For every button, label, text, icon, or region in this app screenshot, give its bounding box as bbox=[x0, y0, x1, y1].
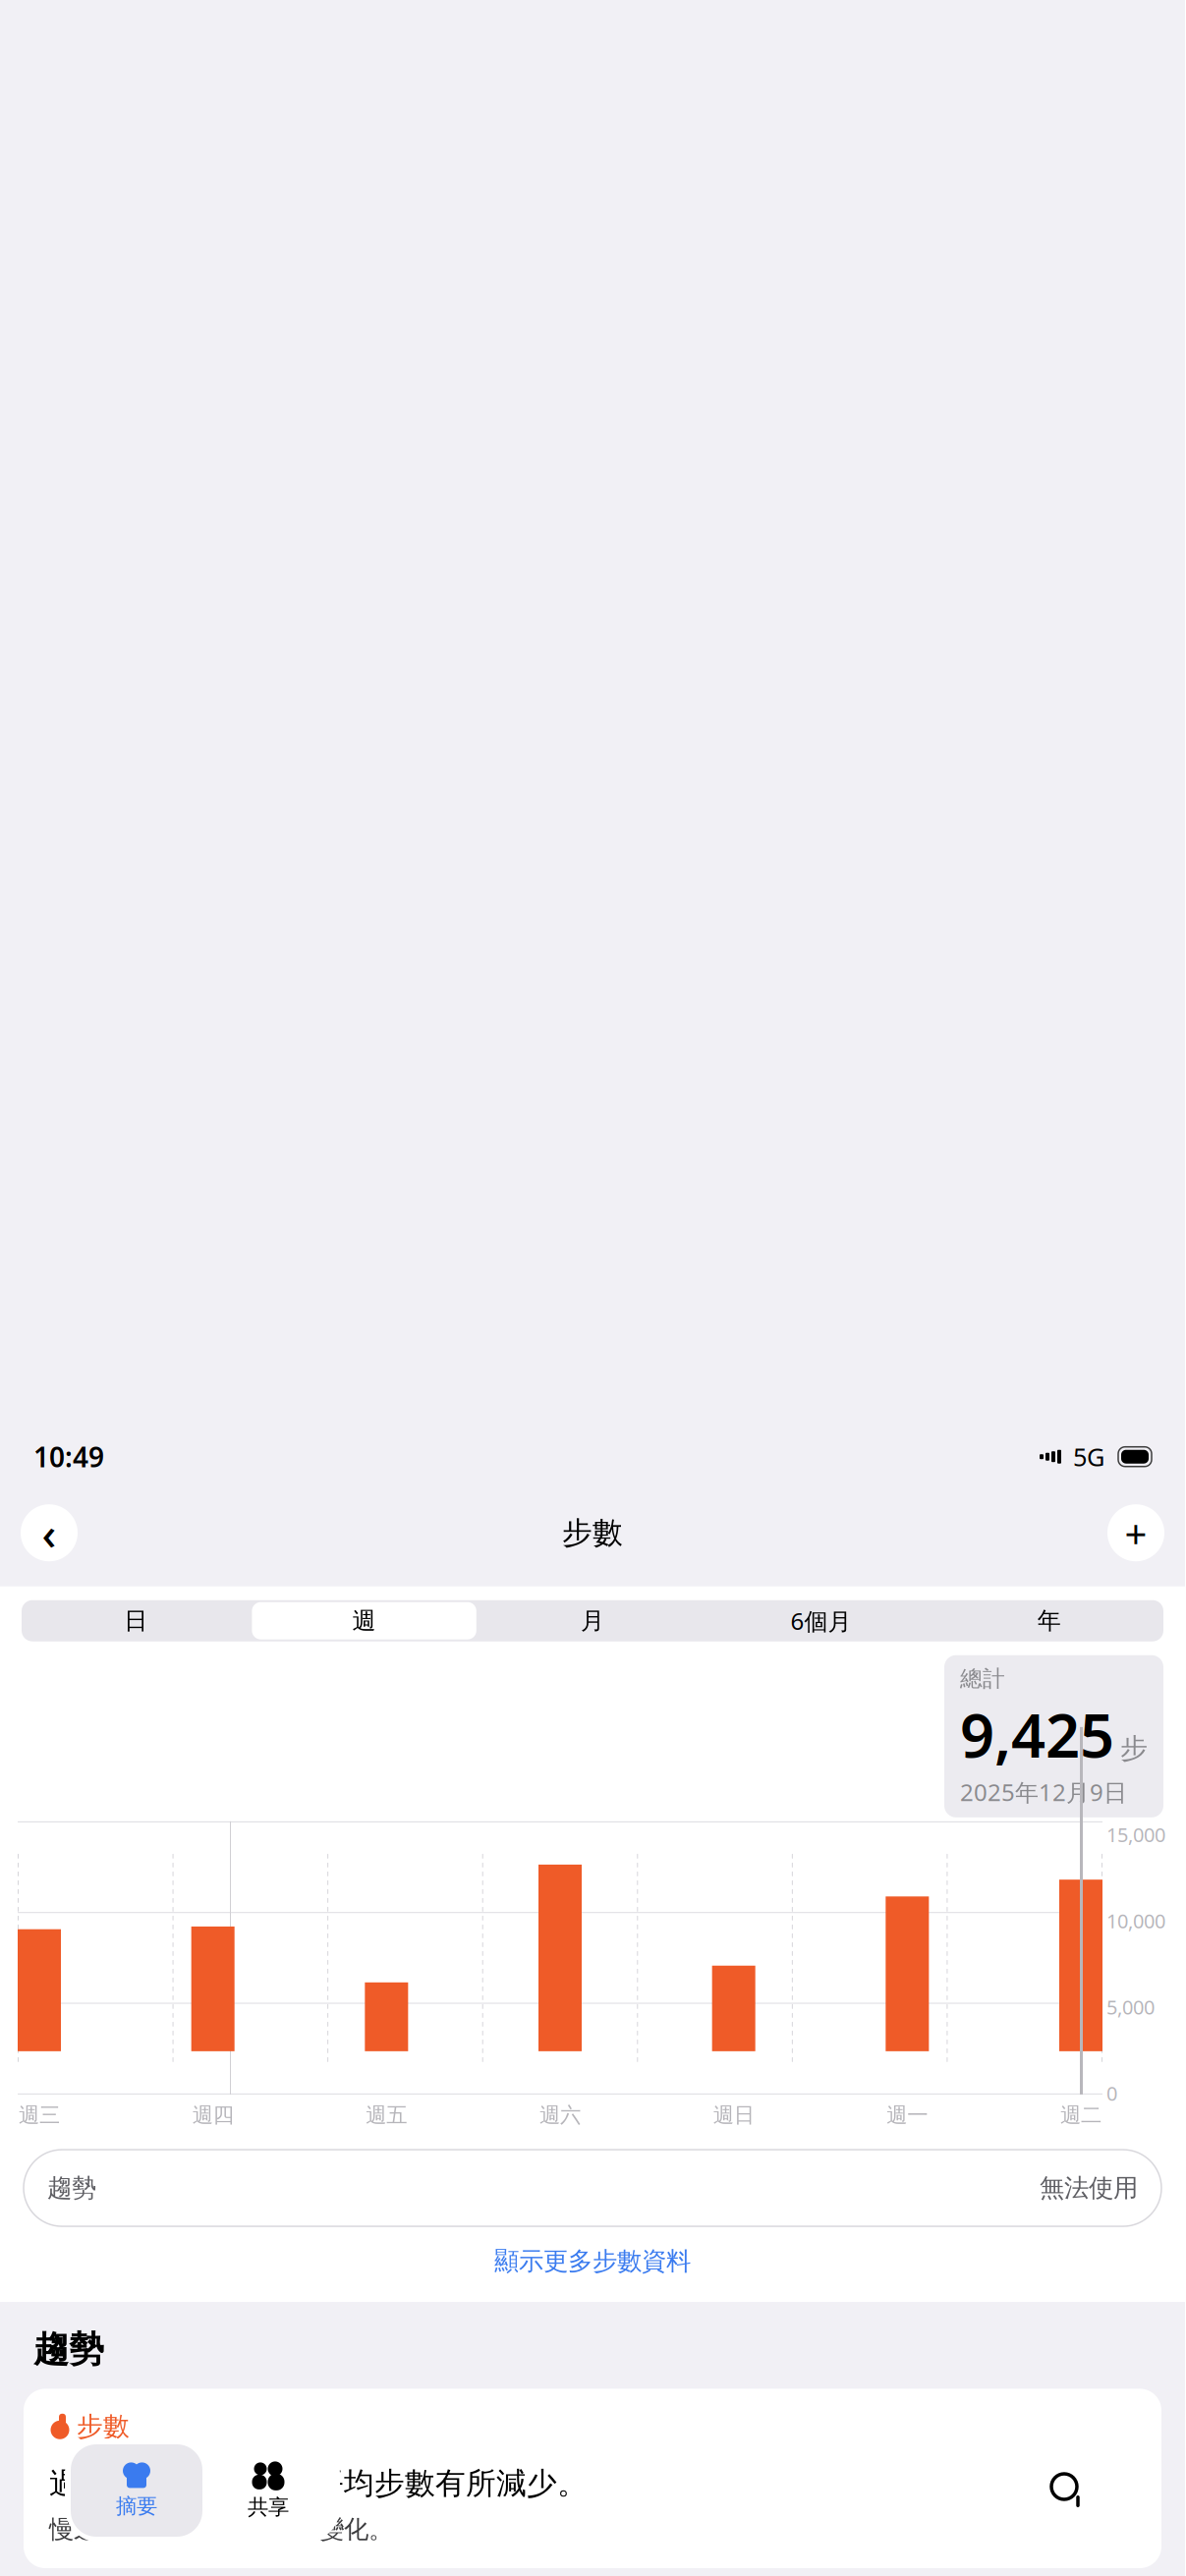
button[interactable]: 摘要 bbox=[71, 2444, 202, 2537]
button[interactable]: 日 bbox=[22, 1600, 250, 1641]
staticText: + bbox=[1125, 1507, 1147, 1559]
staticText: 5,000 bbox=[1106, 1994, 1155, 2020]
staticText: 摘要 bbox=[116, 2493, 157, 2519]
staticText: 無法使用 bbox=[1040, 2173, 1138, 2203]
staticText: ‹ bbox=[42, 1503, 56, 1562]
staticText: 日 bbox=[124, 1606, 148, 1635]
staticText: 週三 bbox=[19, 2102, 60, 2128]
button[interactable]: 返回 bbox=[21, 1504, 78, 1561]
staticText: 週日 bbox=[713, 2102, 754, 2128]
button[interactable]: 趨勢 bbox=[24, 2150, 1161, 2226]
staticText: 10,000 bbox=[1106, 1908, 1165, 1934]
button[interactable]: 6個月 bbox=[707, 1600, 935, 1641]
staticText: 共享 bbox=[248, 2494, 289, 2520]
staticText: 慢乏期間步數預計會發生變化。 bbox=[49, 2514, 393, 2545]
staticText: 趨勢 bbox=[47, 2173, 96, 2203]
staticText: 6個月 bbox=[790, 1605, 851, 1636]
staticText: 步 bbox=[1120, 1732, 1148, 1765]
staticText: 週六 bbox=[539, 2102, 581, 2128]
staticText: 總計 bbox=[960, 1665, 1005, 1692]
staticText: 5G bbox=[1073, 1440, 1104, 1473]
staticText: 週一 bbox=[887, 2102, 928, 2128]
button[interactable]: 搜尋 bbox=[1016, 2438, 1120, 2543]
button[interactable]: 顯示更多步數資料 bbox=[0, 2232, 1185, 2290]
staticText: 年 bbox=[1037, 1606, 1061, 1635]
staticText: 15,000 bbox=[1106, 1821, 1165, 1848]
staticText: 趨勢 bbox=[33, 2328, 104, 2371]
staticText: 月 bbox=[581, 1606, 604, 1635]
button[interactable]: 年 bbox=[935, 1600, 1163, 1641]
staticText: 0 bbox=[1106, 2080, 1117, 2106]
button[interactable]: 週 bbox=[250, 1600, 478, 1641]
button[interactable]: 月 bbox=[478, 1600, 707, 1641]
staticText: 週五 bbox=[366, 2102, 407, 2128]
staticText: 顯示更多步數資料 bbox=[494, 2246, 691, 2277]
staticText: 週 bbox=[352, 1606, 376, 1635]
staticText: 10:49 bbox=[33, 1438, 104, 1475]
staticText: 週二 bbox=[1060, 2102, 1101, 2128]
button[interactable]: 共享 bbox=[202, 2444, 334, 2537]
staticText: 步數 bbox=[77, 2410, 130, 2443]
button[interactable]: 加入資料 bbox=[1107, 1504, 1164, 1561]
staticText: 9,425 bbox=[960, 1694, 1114, 1774]
staticText: 2025年12月9日 bbox=[960, 1776, 1127, 1808]
staticText: 過去 22 星期，你的平均步數有所減少。 bbox=[49, 2462, 588, 2502]
staticText: 週四 bbox=[192, 2102, 234, 2128]
staticText: 步數 bbox=[562, 1514, 623, 1551]
